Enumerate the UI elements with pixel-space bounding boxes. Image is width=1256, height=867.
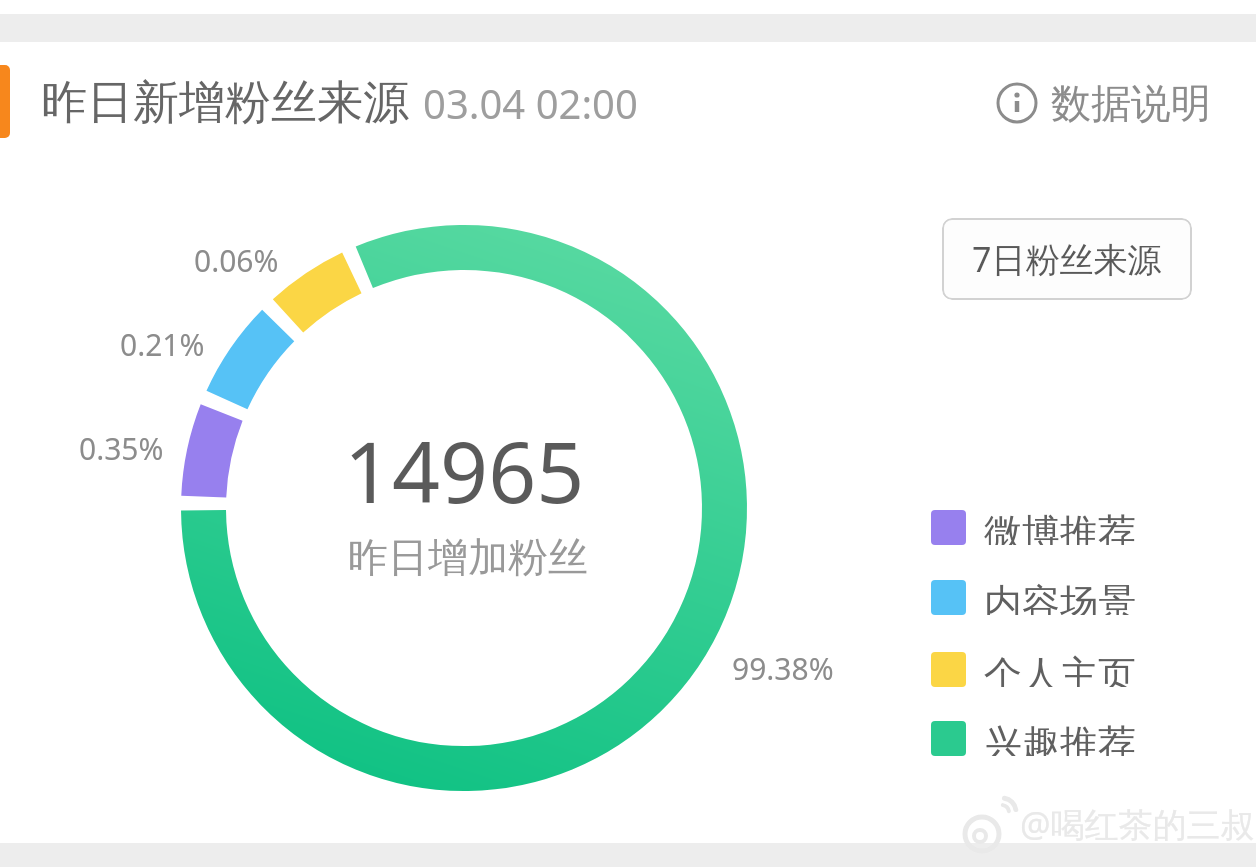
staticText: @喝红茶的三叔: [1020, 801, 1255, 847]
staticText: 0.06%: [194, 240, 279, 281]
staticText: 03.04 02:00: [423, 76, 638, 130]
staticText: 昨日新增粉丝来源: [41, 74, 409, 132]
button[interactable]: 数据说明: [996, 72, 1211, 134]
staticText: 0.35%: [79, 428, 164, 469]
staticText: 昨日增加粉丝: [348, 532, 588, 582]
staticText: 数据说明: [1051, 78, 1211, 128]
staticText: 7日粉丝来源: [972, 236, 1162, 282]
staticText: 微博推荐: [984, 509, 1136, 545]
staticText: 99.38%: [732, 648, 834, 689]
staticText: 兴趣推荐: [984, 720, 1136, 756]
staticText: 0.21%: [120, 324, 205, 365]
staticText: 内容场景: [984, 579, 1136, 615]
button[interactable]: 7日粉丝来源: [942, 218, 1192, 300]
staticText: 个人主页: [984, 651, 1136, 687]
staticText: 14965: [344, 413, 585, 527]
